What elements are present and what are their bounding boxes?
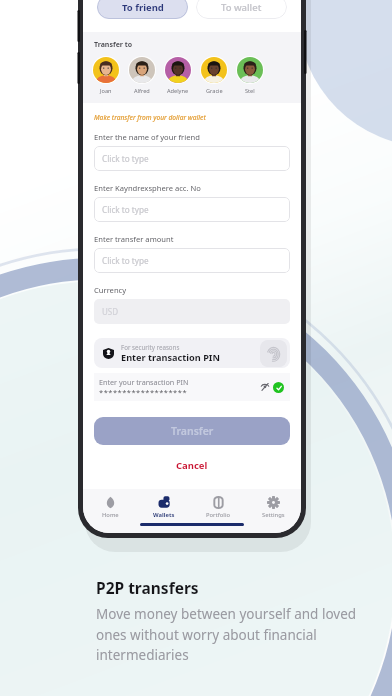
staticText: To friend [122, 1, 164, 14]
staticText: Home [102, 511, 119, 519]
staticText: ******************* [99, 387, 188, 397]
button[interactable]: Transfer [94, 417, 290, 445]
staticText: Transfer [171, 424, 214, 438]
staticText: Move money between yourself and loved on… [96, 605, 370, 664]
staticText: Currency [94, 285, 127, 295]
button[interactable]: Cancel [168, 456, 216, 475]
button[interactable]: Settings [246, 496, 301, 519]
staticText: Gracie [206, 87, 223, 95]
button[interactable]: Gracie [200, 56, 228, 95]
staticText: Joan [100, 87, 112, 95]
button[interactable]: Use fingerprint [260, 340, 287, 367]
staticText: Enter the name of your friend [94, 132, 200, 142]
staticText: Click to type [102, 153, 149, 164]
button[interactable]: Alfred [128, 56, 156, 95]
staticText: Adelyne [167, 87, 189, 95]
staticText: Enter your transaction PIN [99, 377, 189, 387]
button[interactable]: Wallets [137, 496, 191, 519]
button[interactable]: Click to type [94, 248, 290, 273]
staticText: Transfer to [94, 40, 133, 50]
staticText: Alfred [134, 87, 150, 95]
button[interactable]: Stel [236, 56, 264, 95]
button[interactable]: Adelyne [164, 56, 192, 95]
staticText: USD [102, 306, 119, 317]
staticText: Click to type [102, 204, 149, 215]
staticText: Wallets [153, 511, 175, 519]
button[interactable]: Click to type [94, 146, 290, 171]
staticText: For security reasons [121, 343, 180, 351]
staticText: Settings [262, 511, 285, 519]
staticText: Click to type [102, 255, 149, 266]
staticText: To wallet [221, 1, 262, 14]
button[interactable]: Click to type [94, 197, 290, 222]
button[interactable]: Enter your transaction PIN [94, 373, 290, 401]
staticText: Portfolio [206, 511, 231, 519]
button[interactable]: To friend [97, 0, 188, 19]
staticText: Make transfer from your dollar wallet [94, 113, 206, 122]
staticText: Enter Kayndrexsphere acc. No [94, 183, 201, 193]
button[interactable]: Portfolio [191, 496, 246, 519]
staticText: Cancel [176, 459, 208, 472]
staticText: Enter transfer amount [94, 234, 174, 244]
button[interactable]: Home [83, 496, 137, 519]
staticText: P2P transfers [96, 577, 199, 598]
staticText: Enter transaction PIN [121, 351, 220, 364]
button[interactable]: Joan [92, 56, 120, 95]
button[interactable]: To wallet [196, 0, 287, 19]
staticText: Stel [245, 87, 255, 95]
